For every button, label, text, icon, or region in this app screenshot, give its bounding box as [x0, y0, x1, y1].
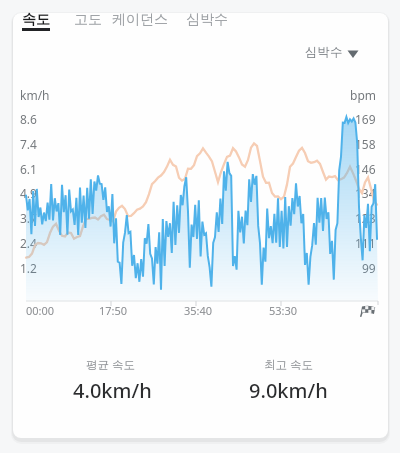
staticText: 7.4: [20, 136, 37, 152]
staticText: bpm: [350, 87, 376, 103]
staticText: 고도: [74, 11, 102, 29]
button[interactable]: 심박수: [305, 41, 363, 63]
staticText: 17:50: [99, 303, 128, 318]
button[interactable]: 속도: [6, 7, 66, 33]
staticText: 146: [355, 161, 376, 177]
staticText: 111: [355, 235, 376, 251]
staticText: 8.6: [20, 111, 37, 127]
staticText: 158: [355, 136, 376, 152]
staticText: 4.0km/h: [73, 377, 152, 403]
button[interactable]: 고도: [58, 7, 118, 33]
staticText: 123: [355, 210, 376, 226]
staticText: 99: [362, 260, 376, 276]
staticText: 2.4: [20, 235, 37, 251]
staticText: 00:00: [26, 303, 55, 318]
staticText: 평균 속도: [86, 357, 135, 373]
staticText: 3.7: [20, 210, 37, 226]
staticText: 9.0km/h: [249, 377, 328, 403]
staticText: 6.1: [20, 161, 37, 177]
staticText: 케이던스: [112, 11, 168, 29]
staticText: 134: [355, 185, 376, 201]
staticText: 심박수: [186, 11, 228, 29]
staticText: 1.2: [20, 260, 37, 276]
staticText: 속도: [22, 11, 50, 29]
button[interactable]: 심박수: [172, 7, 242, 33]
staticText: 심박수: [305, 44, 343, 60]
staticText: 169: [355, 111, 376, 127]
staticText: 최고 속도: [264, 357, 313, 373]
staticText: km/h: [20, 87, 50, 103]
staticText: 35:40: [184, 303, 213, 318]
button[interactable]: 케이던스: [100, 7, 180, 33]
staticText: 4.9: [20, 185, 37, 201]
staticText: 53:30: [269, 303, 298, 318]
